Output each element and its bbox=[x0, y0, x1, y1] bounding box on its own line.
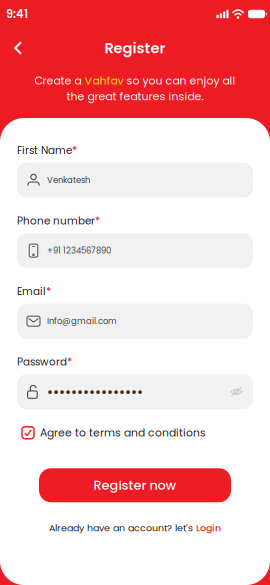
button[interactable]: Agree to terms and conditions bbox=[17, 425, 206, 440]
staticText: * bbox=[67, 355, 72, 369]
staticText: Venkatesh bbox=[47, 174, 90, 186]
staticText: Already have an account? let's bbox=[49, 521, 196, 535]
staticText: +91 1234567890 bbox=[47, 245, 111, 256]
staticText: •••••••••••••••• bbox=[47, 383, 143, 400]
staticText: Password bbox=[17, 355, 67, 369]
staticText: Create a bbox=[34, 73, 84, 88]
button[interactable]: Register now bbox=[39, 468, 231, 502]
staticText: Vahfav bbox=[84, 73, 123, 88]
staticText: Phone number bbox=[17, 214, 95, 228]
button[interactable]: Back bbox=[7, 36, 29, 60]
staticText: Email bbox=[17, 284, 46, 299]
staticText: * bbox=[46, 284, 51, 299]
staticText: Login bbox=[196, 521, 221, 535]
staticText: Info@gmail.com bbox=[47, 315, 117, 327]
staticText: Agree to terms and conditions bbox=[40, 425, 206, 440]
staticText: the great features inside. bbox=[66, 89, 203, 104]
staticText: * bbox=[95, 214, 100, 228]
staticText: * bbox=[72, 143, 77, 158]
staticText: Register now bbox=[93, 476, 176, 494]
staticText: so you can enjoy all bbox=[123, 73, 235, 88]
staticText: 9:41 bbox=[6, 6, 28, 22]
staticText: Register bbox=[104, 38, 165, 58]
staticText: First Name bbox=[17, 143, 72, 158]
button[interactable]: Already have an account? let's bbox=[17, 521, 253, 535]
